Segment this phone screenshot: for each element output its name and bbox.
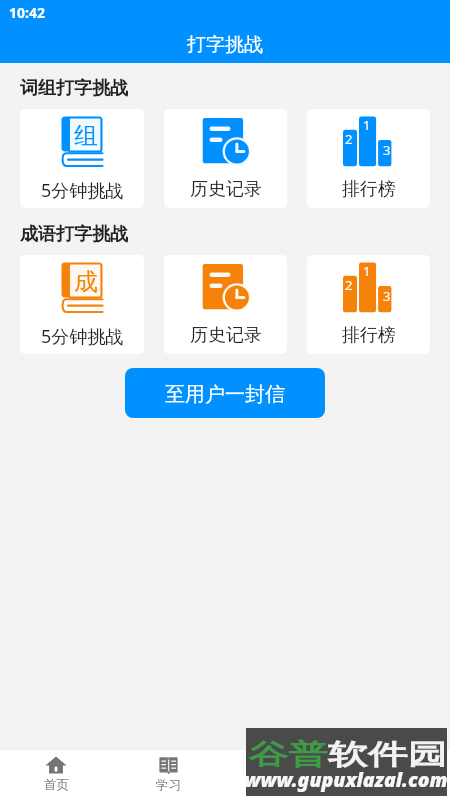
button[interactable]: 2: [307, 255, 430, 354]
button[interactable]: 组: [20, 109, 144, 208]
staticText: 10:42: [9, 3, 45, 22]
button[interactable]: 2: [307, 109, 430, 208]
staticText: 1: [363, 262, 371, 280]
staticText: 5分钟挑战: [41, 324, 124, 349]
button[interactable]: 学习: [112, 750, 225, 800]
staticText: 成: [74, 267, 98, 297]
staticText: 至用户一封信: [165, 382, 285, 407]
staticText: 排行榜: [342, 178, 396, 201]
staticText: 3: [383, 141, 391, 159]
staticText: 学习: [156, 777, 181, 793]
staticText: 2: [345, 276, 353, 294]
button[interactable]: 首页: [0, 750, 112, 800]
button[interactable]: 历史记录: [164, 109, 287, 208]
staticText: 软件园: [328, 737, 448, 772]
button[interactable]: 至用户一封信: [125, 368, 325, 418]
button[interactable]: 历史记录: [164, 255, 287, 354]
staticText: 首页: [44, 777, 69, 793]
staticText: 历史记录: [190, 324, 262, 347]
staticText: 5分钟挑战: [41, 178, 124, 203]
button[interactable]: 成: [20, 255, 144, 354]
staticText: 排行榜: [342, 324, 396, 347]
staticText: www.gupuxlazal.com: [244, 767, 448, 794]
staticText: 词组打字挑战: [20, 77, 128, 100]
staticText: 2: [345, 130, 353, 148]
staticText: 1: [363, 116, 371, 134]
staticText: 组: [74, 121, 98, 151]
staticText: 成语打字挑战: [20, 223, 128, 246]
staticText: 历史记录: [190, 178, 262, 201]
staticText: 谷普: [248, 737, 328, 772]
staticText: 3: [383, 287, 391, 305]
staticText: 打字挑战: [187, 33, 263, 57]
